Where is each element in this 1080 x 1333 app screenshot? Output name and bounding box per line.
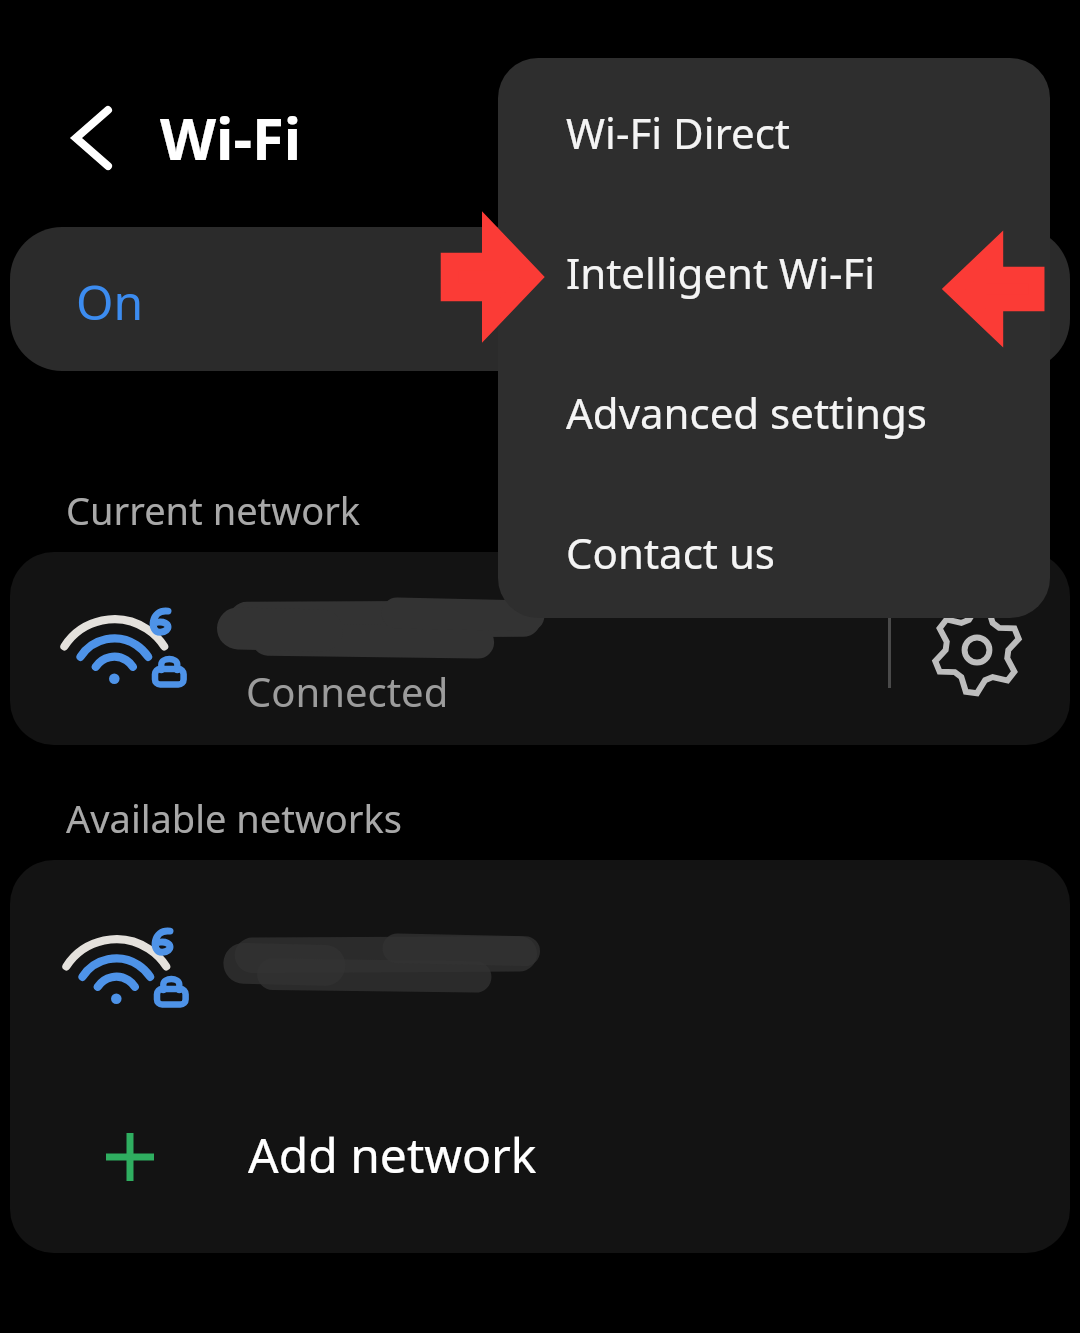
staticText: On [76,269,144,334]
button[interactable]: Back [40,92,140,188]
button[interactable]: Advanced settings [498,338,1050,478]
staticText: Contact us [566,524,775,581]
button[interactable]: On [10,227,1070,371]
button[interactable]: Wi-Fi Direct [498,58,1050,198]
button[interactable]: Connected [10,552,1070,745]
button[interactable] [10,860,1070,1055]
staticText: Wi-Fi Direct [566,104,790,161]
staticText: Intelligent Wi-Fi [566,244,876,301]
button[interactable]: Contact us [498,478,1050,618]
staticText: Add network [248,1122,537,1187]
staticText: Advanced settings [566,384,927,441]
staticText: Wi-Fi [160,98,302,177]
button[interactable]: Add network [10,1072,1070,1252]
button[interactable]: Network settings [918,596,1036,704]
staticText: Current network [66,484,361,536]
staticText: Available networks [66,792,402,844]
staticText: Connected [246,664,449,718]
button[interactable]: Intelligent Wi-Fi [498,198,1050,338]
